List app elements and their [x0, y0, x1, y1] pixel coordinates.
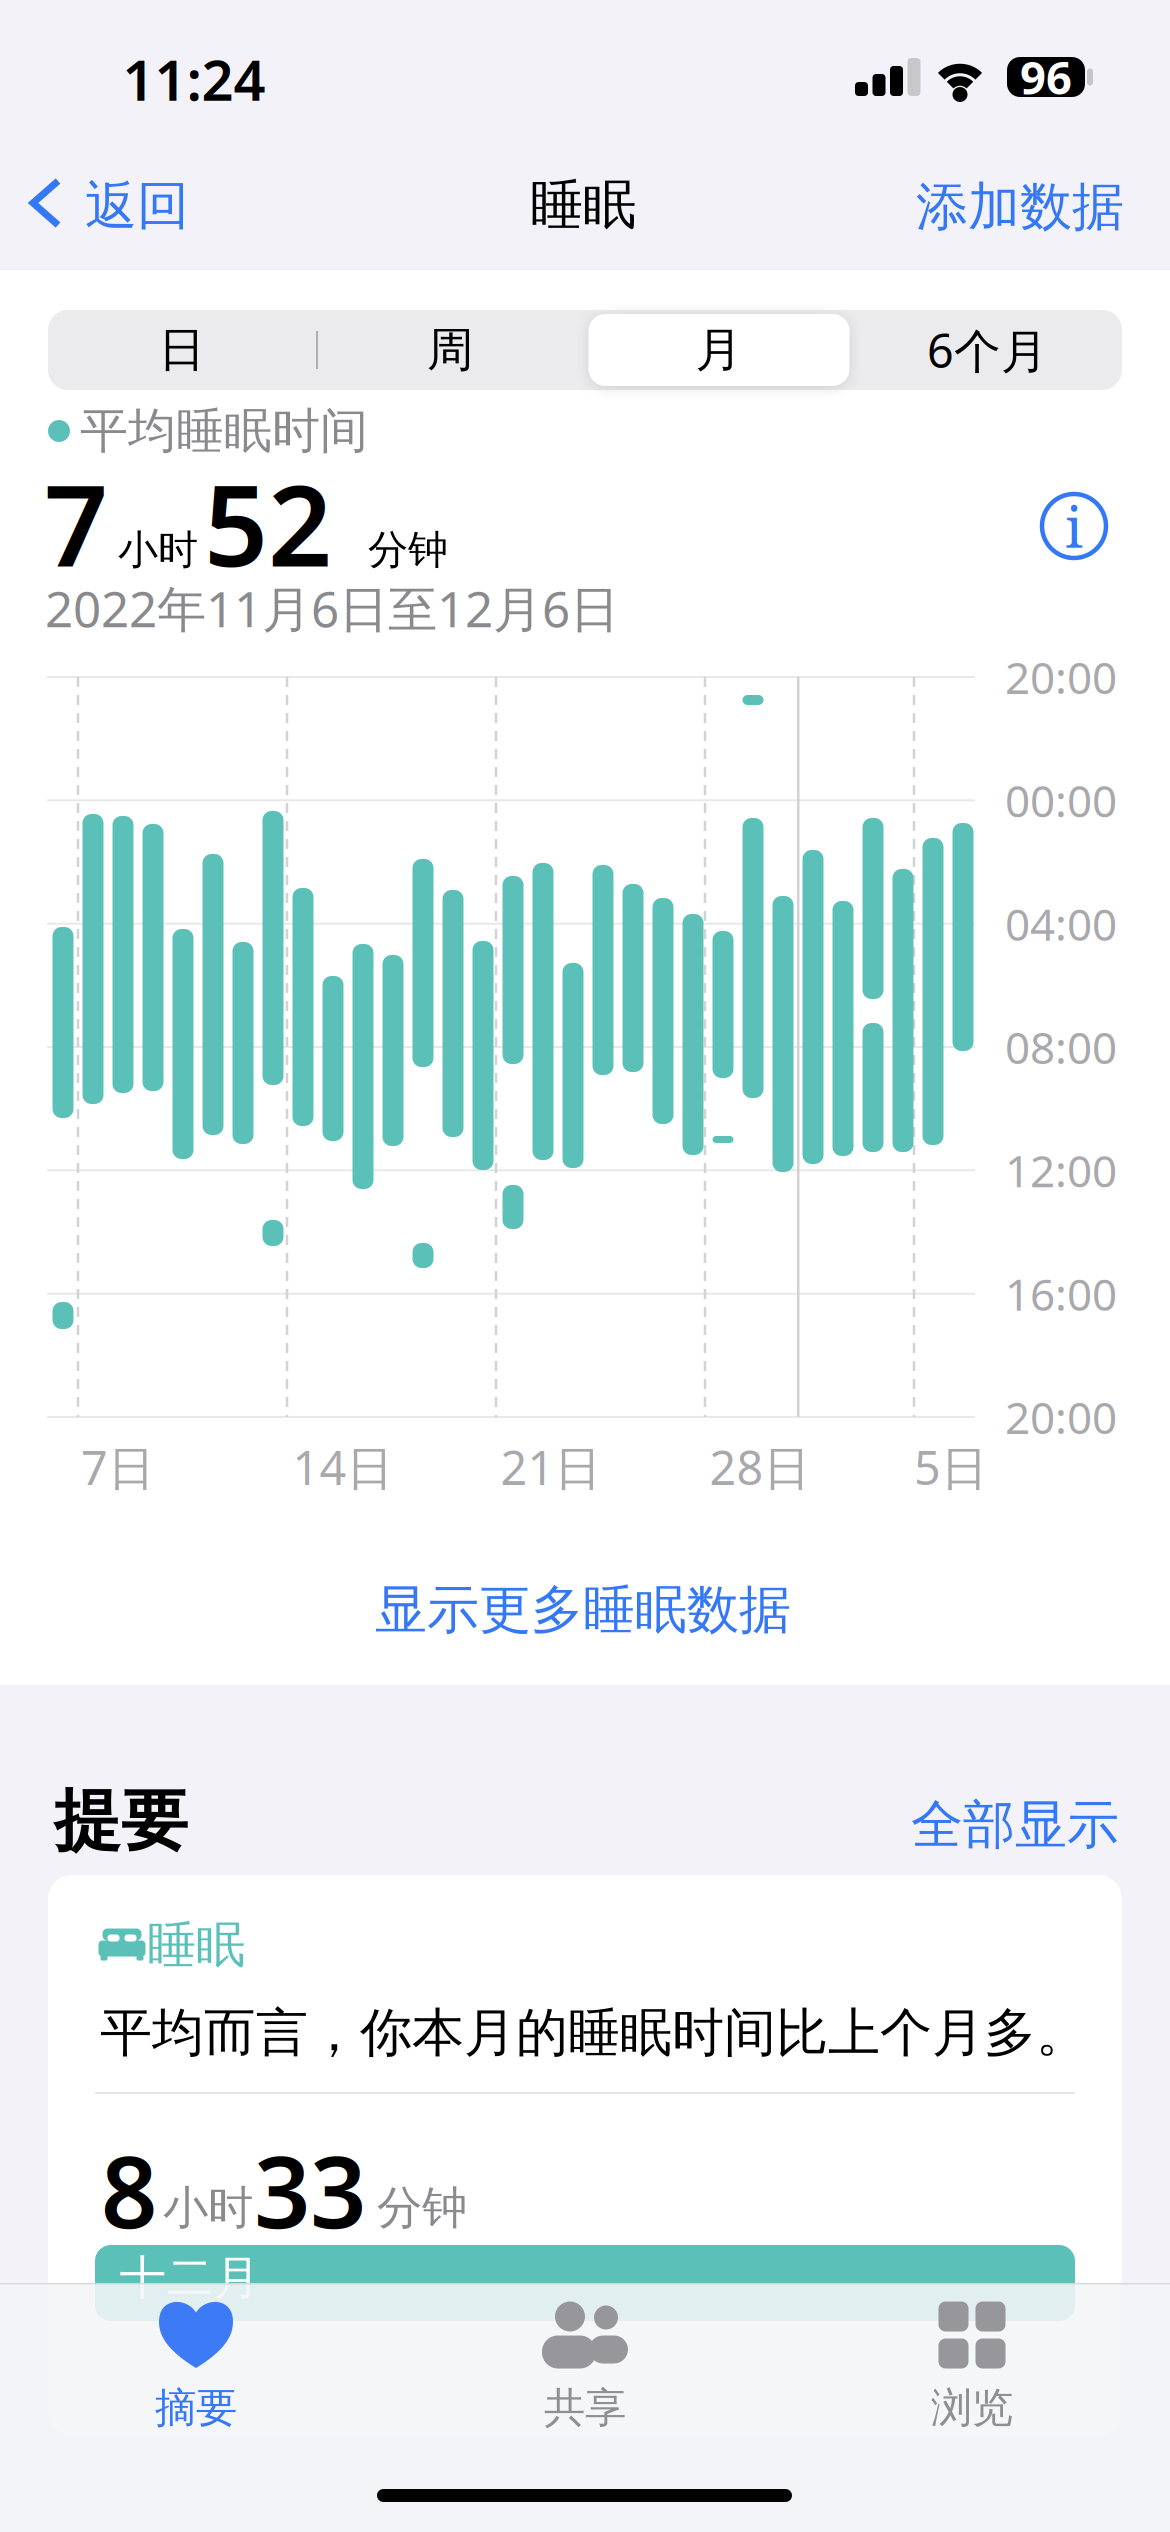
- staticText: 显示更多睡眠数据: [375, 1578, 791, 1642]
- button[interactable]: 月: [585, 310, 853, 390]
- staticText: 96: [1020, 47, 1072, 107]
- staticText: 返回: [85, 174, 189, 238]
- staticText: 6个月: [927, 319, 1048, 381]
- staticText: 20:00: [1005, 648, 1117, 706]
- button[interactable]: 日: [48, 310, 316, 390]
- staticText: 08:00: [1005, 1018, 1117, 1076]
- staticText: 分钟: [368, 525, 448, 574]
- staticText: 04:00: [1005, 894, 1117, 953]
- staticText: 睡眠: [147, 1915, 245, 1975]
- staticText: 日: [158, 321, 205, 379]
- staticText: 摘要: [155, 2383, 237, 2433]
- staticText: 14日: [292, 1436, 393, 1498]
- button[interactable]: 摘要: [46, 2290, 346, 2450]
- staticText: 20:00: [1005, 1388, 1117, 1446]
- staticText: 5日: [914, 1436, 988, 1498]
- staticText: 提要: [54, 1780, 188, 1862]
- staticText: 分钟: [377, 2180, 467, 2236]
- staticText: 小时: [118, 525, 198, 574]
- staticText: 00:00: [1005, 771, 1117, 829]
- button[interactable]: 周: [316, 310, 584, 390]
- button[interactable]: i: [1040, 492, 1108, 560]
- staticText: 全部显示: [911, 1793, 1119, 1857]
- staticText: 16:00: [1005, 1264, 1117, 1323]
- staticText: 十二月: [119, 2249, 260, 2307]
- staticText: 平均而言，你本月的睡眠时间比上个月多。: [100, 2001, 1088, 2065]
- staticText: 12:00: [1005, 1141, 1117, 1199]
- staticText: 2022年11月6日至12月6日: [45, 575, 619, 641]
- staticText: 7: [44, 449, 108, 597]
- button[interactable]: 共享: [435, 2290, 735, 2450]
- staticText: i: [1065, 488, 1083, 564]
- staticText: 添加数据: [916, 175, 1124, 239]
- staticText: 33: [254, 2124, 366, 2255]
- staticText: 52: [204, 449, 332, 597]
- staticText: 28日: [709, 1436, 810, 1498]
- staticText: 共享: [544, 2383, 626, 2433]
- button[interactable]: 睡眠: [48, 1875, 1122, 2435]
- button[interactable]: 全部显示: [885, 1790, 1145, 1860]
- staticText: 平均睡眠时间: [80, 401, 368, 460]
- button[interactable]: 显示更多睡眠数据: [333, 1570, 833, 1650]
- button[interactable]: 添加数据: [890, 167, 1150, 247]
- staticText: 8: [101, 2124, 157, 2255]
- staticText: 21日: [500, 1436, 601, 1498]
- staticText: 浏览: [931, 2383, 1013, 2433]
- button[interactable]: 浏览: [822, 2290, 1122, 2450]
- staticText: 月: [695, 321, 742, 379]
- staticText: 小时: [163, 2180, 253, 2236]
- staticText: 11:24: [122, 42, 265, 116]
- button[interactable]: 返回: [29, 163, 199, 243]
- button[interactable]: 6个月: [853, 310, 1121, 390]
- staticText: 7日: [81, 1436, 155, 1498]
- staticText: 睡眠: [530, 172, 636, 238]
- staticText: 周: [427, 321, 474, 379]
